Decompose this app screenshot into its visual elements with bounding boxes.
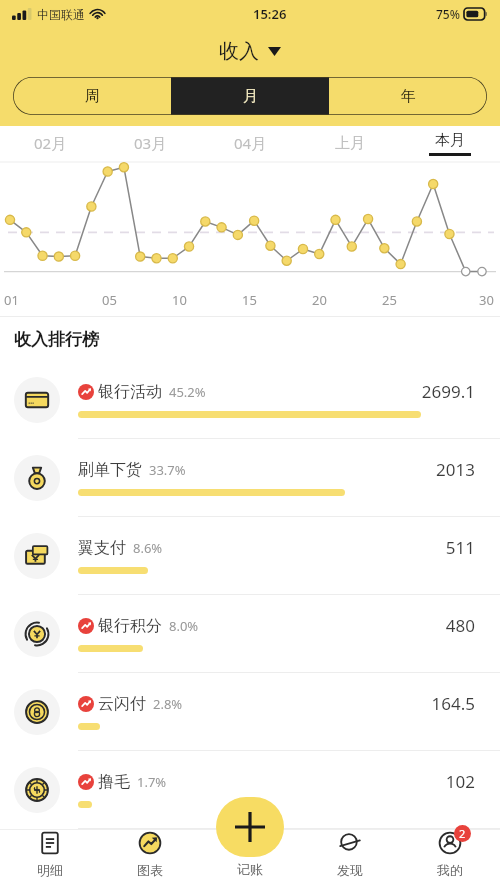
staticText: 中国联通 (37, 7, 85, 22)
button[interactable]: 刷单下货 (0, 439, 500, 517)
staticText: 20 (312, 291, 327, 309)
staticText: 75% (436, 6, 460, 22)
staticText: 01 (4, 291, 19, 309)
staticText: 收入 (219, 39, 259, 64)
button[interactable]: 月 (171, 77, 329, 115)
staticText: 45.2% (169, 383, 206, 401)
staticText: 翼支付 (78, 538, 126, 558)
button[interactable]: 本月 (400, 126, 500, 160)
staticText: 05 (102, 291, 117, 309)
staticText: 33.7% (149, 461, 186, 479)
staticText: 本月 (435, 131, 465, 150)
button[interactable]: 撸毛 (0, 751, 500, 829)
button[interactable]: 年 (329, 77, 487, 115)
staticText: 周 (85, 87, 100, 106)
staticText: 图表 (137, 862, 163, 877)
button[interactable]: 上月 (300, 126, 400, 160)
button[interactable]: 明细 (0, 829, 100, 889)
button[interactable]: 银行积分 (0, 595, 500, 673)
button[interactable]: 04月 (200, 126, 300, 160)
staticText: 2699.1 (421, 380, 475, 403)
button[interactable]: 云闪付 (0, 673, 500, 751)
staticText: 25 (382, 291, 397, 309)
staticText: 2.8% (153, 695, 183, 713)
staticText: 发现 (337, 862, 363, 877)
button[interactable]: 记账 Add (216, 797, 284, 857)
staticText: 明细 (37, 862, 63, 877)
button[interactable]: 发现 (300, 829, 400, 889)
staticText: 480 (445, 614, 475, 637)
button[interactable]: 02月 (0, 126, 100, 160)
button[interactable]: 周 (13, 77, 171, 115)
staticText: 10 (172, 291, 187, 309)
staticText: 上月 (335, 134, 365, 153)
button[interactable]: 收入 (0, 28, 500, 74)
button[interactable]: 银行活动 (0, 361, 500, 439)
button[interactable]: 图表 (100, 829, 200, 889)
staticText: 云闪付 (98, 694, 146, 714)
staticText: 年 (401, 87, 416, 106)
staticText: 我的 (437, 862, 463, 877)
staticText: 2013 (436, 458, 475, 481)
staticText: 刷单下货 (78, 460, 142, 480)
staticText: 511 (445, 536, 475, 559)
staticText: 15 (242, 291, 257, 309)
button[interactable]: 翼支付 (0, 517, 500, 595)
staticText: 30 (479, 291, 494, 309)
staticText: 03月 (134, 133, 167, 153)
button[interactable]: 03月 (100, 126, 200, 160)
staticText: 银行活动 (98, 382, 162, 402)
button[interactable]: 2 (400, 829, 500, 889)
staticText: 164.5 (431, 692, 475, 715)
staticText: 记账 (237, 861, 263, 877)
staticText: 02月 (34, 133, 67, 153)
staticText: 1.7% (137, 773, 167, 791)
staticText: 月 (243, 87, 258, 106)
staticText: 2 (459, 826, 466, 841)
staticText: 102 (445, 770, 475, 793)
staticText: 15:26 (253, 5, 287, 23)
staticText: 04月 (234, 133, 267, 153)
staticText: 银行积分 (98, 616, 162, 636)
staticText: 8.0% (169, 617, 199, 635)
staticText: 8.6% (133, 539, 163, 557)
button[interactable]: 记账 (200, 861, 300, 889)
staticText: 撸毛 (98, 772, 130, 792)
staticText: 收入排行榜 (14, 329, 99, 350)
